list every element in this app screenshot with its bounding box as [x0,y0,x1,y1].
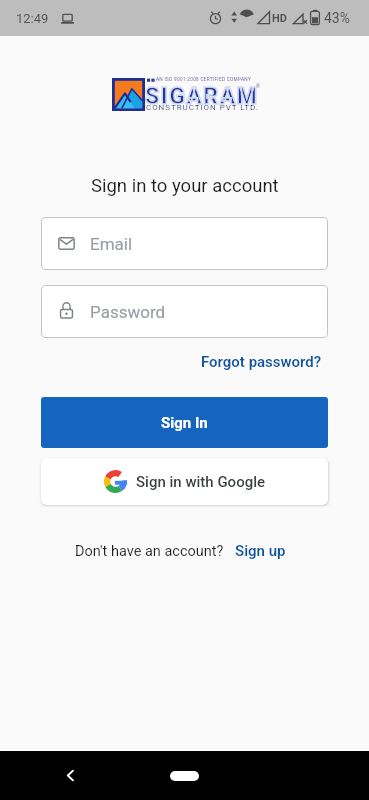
staticText: Sign in with Google [136,473,266,491]
button[interactable]: Password [41,285,328,338]
button[interactable]: Sign in with Google [41,458,328,505]
staticText: 12:49 [16,11,49,26]
button[interactable]: Forgot password? [191,351,369,373]
staticText: 43% [324,10,350,26]
staticText: Forgot password? [201,353,322,371]
staticText: ® [256,83,260,89]
button[interactable]: Home [170,771,199,781]
staticText: Sign up [235,542,286,560]
staticText: Sign in to your account [91,175,279,197]
staticText: AN ISO 9001:2008 CERTIFIED COMPANY [156,77,252,83]
button[interactable]: Back [62,767,79,784]
staticText: SIGARAM [145,83,259,110]
button[interactable]: Sign In [41,397,328,448]
button[interactable]: Email [41,217,328,270]
staticText: SIGARAM [145,83,259,110]
staticText: Sign In [161,414,208,432]
staticText: Don't have an account? [75,543,224,560]
staticText: Email [90,234,133,254]
staticText: Password [90,302,166,322]
button[interactable]: Sign up [235,542,286,560]
staticText: HD [272,12,287,25]
staticText: CONSTRUCTION PVT LTD. [146,103,259,112]
